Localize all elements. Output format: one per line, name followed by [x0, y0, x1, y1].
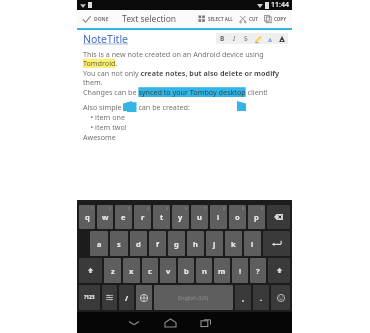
- button[interactable]: i: [210, 205, 227, 229]
- button[interactable]: z: [104, 258, 121, 283]
- staticText: i: [217, 212, 220, 222]
- staticText: p: [254, 212, 259, 222]
- button[interactable]: CUT: [236, 10, 261, 28]
- button[interactable]: m: [214, 258, 230, 283]
- button[interactable]: h: [187, 231, 204, 256]
- staticText: u: [197, 212, 202, 222]
- button[interactable]: e: [115, 205, 132, 229]
- staticText: English (US): [178, 294, 209, 301]
- button[interactable]: Recents: [188, 312, 224, 333]
- button[interactable]: B: [216, 33, 228, 44]
- staticText: COPY: [274, 16, 286, 22]
- button[interactable]: g: [168, 231, 185, 256]
- staticText: .: [260, 293, 263, 303]
- button[interactable]: y: [172, 205, 189, 229]
- button[interactable]: SELECT ALL: [195, 10, 236, 28]
- button[interactable]: /: [119, 285, 134, 310]
- button[interactable]: f: [149, 231, 166, 256]
- button[interactable]: o: [229, 205, 246, 229]
- staticText: s: [117, 239, 121, 249]
- staticText: B: [220, 34, 225, 43]
- staticText: ,: [242, 293, 245, 303]
- staticText: 5: [166, 206, 169, 211]
- staticText: y: [178, 212, 183, 222]
- button[interactable]: p: [248, 205, 265, 229]
- staticText: 8: [223, 206, 226, 211]
- button[interactable]: t: [153, 205, 170, 229]
- button[interactable]: Settings: [102, 285, 117, 310]
- button[interactable]: ,: [235, 285, 251, 310]
- staticText: r: [141, 212, 145, 222]
- button[interactable]: ?: [250, 258, 266, 283]
- button[interactable]: Enter: [263, 231, 290, 256]
- staticText: h: [193, 239, 198, 249]
- button[interactable]: u: [191, 205, 208, 229]
- staticText: b: [184, 266, 189, 276]
- button[interactable]: Language: [136, 285, 152, 310]
- button[interactable]: c: [142, 258, 158, 283]
- staticText: m: [218, 266, 226, 276]
- button[interactable]: l: [244, 231, 261, 256]
- button[interactable]: k: [225, 231, 242, 256]
- button[interactable]: Emoji: [271, 285, 290, 310]
- staticText: v: [166, 266, 171, 276]
- button[interactable]: j: [206, 231, 223, 256]
- button[interactable]: NoteTitle: [83, 32, 129, 46]
- button[interactable]: Shift: [79, 258, 102, 283]
- staticText: NoteTitle: [83, 32, 129, 46]
- button[interactable]: q: [79, 205, 95, 229]
- button[interactable]: n: [196, 258, 212, 283]
- button[interactable]: S: [240, 33, 252, 44]
- staticText: 3: [128, 206, 131, 211]
- button[interactable]: DONE: [77, 10, 114, 28]
- button[interactable]: a: [90, 231, 108, 256]
- staticText: This is a new note created on an Android…: [83, 49, 288, 68]
- button[interactable]: ?123: [79, 285, 100, 310]
- staticText: n: [202, 266, 207, 276]
- button[interactable]: Home: [152, 312, 188, 333]
- staticText: DONE: [94, 16, 109, 23]
- staticText: k: [231, 239, 236, 249]
- staticText: !: [239, 266, 242, 276]
- button[interactable]: Format: [264, 33, 276, 44]
- button[interactable]: w: [97, 205, 113, 229]
- staticText: o: [235, 212, 240, 222]
- staticText: 1: [91, 206, 94, 211]
- button[interactable]: .: [253, 285, 269, 310]
- button[interactable]: b: [178, 258, 194, 283]
- staticText: e: [121, 212, 126, 222]
- button[interactable]: s: [110, 231, 128, 256]
- button[interactable]: !: [232, 258, 248, 283]
- staticText: d: [136, 239, 141, 249]
- button[interactable]: Format: [252, 33, 264, 44]
- button[interactable]: I: [228, 33, 240, 44]
- staticText: 11:44: [271, 0, 289, 10]
- button[interactable]: COPY: [261, 10, 289, 28]
- button[interactable]: v: [160, 258, 176, 283]
- staticText: 2: [109, 206, 112, 211]
- button[interactable]: x: [123, 258, 140, 283]
- staticText: z: [111, 266, 115, 276]
- button[interactable]: r: [134, 205, 151, 229]
- staticText: 0: [261, 206, 264, 211]
- staticText: w: [102, 212, 109, 222]
- button[interactable]: English (US): [154, 285, 233, 310]
- staticText: S: [244, 34, 248, 43]
- staticText: f: [156, 239, 159, 249]
- staticText: 9: [242, 206, 245, 211]
- staticText: CUT: [249, 16, 258, 22]
- button[interactable]: Hide keyboard: [116, 312, 152, 333]
- button[interactable]: Shift: [268, 258, 290, 283]
- staticText: • item one: [83, 112, 125, 122]
- button[interactable]: Backspace: [267, 205, 290, 229]
- button[interactable]: Format: [276, 33, 288, 44]
- staticText: SELECT ALL: [208, 16, 233, 22]
- staticText: /: [125, 293, 129, 303]
- staticText: c: [148, 266, 152, 276]
- button[interactable]: d: [130, 231, 147, 256]
- staticText: x: [129, 266, 134, 276]
- staticText: ?123: [84, 294, 95, 301]
- staticText: You can not only create notes, but also …: [83, 68, 288, 87]
- staticText: Awesome: [83, 132, 116, 142]
- staticText: j: [213, 239, 216, 249]
